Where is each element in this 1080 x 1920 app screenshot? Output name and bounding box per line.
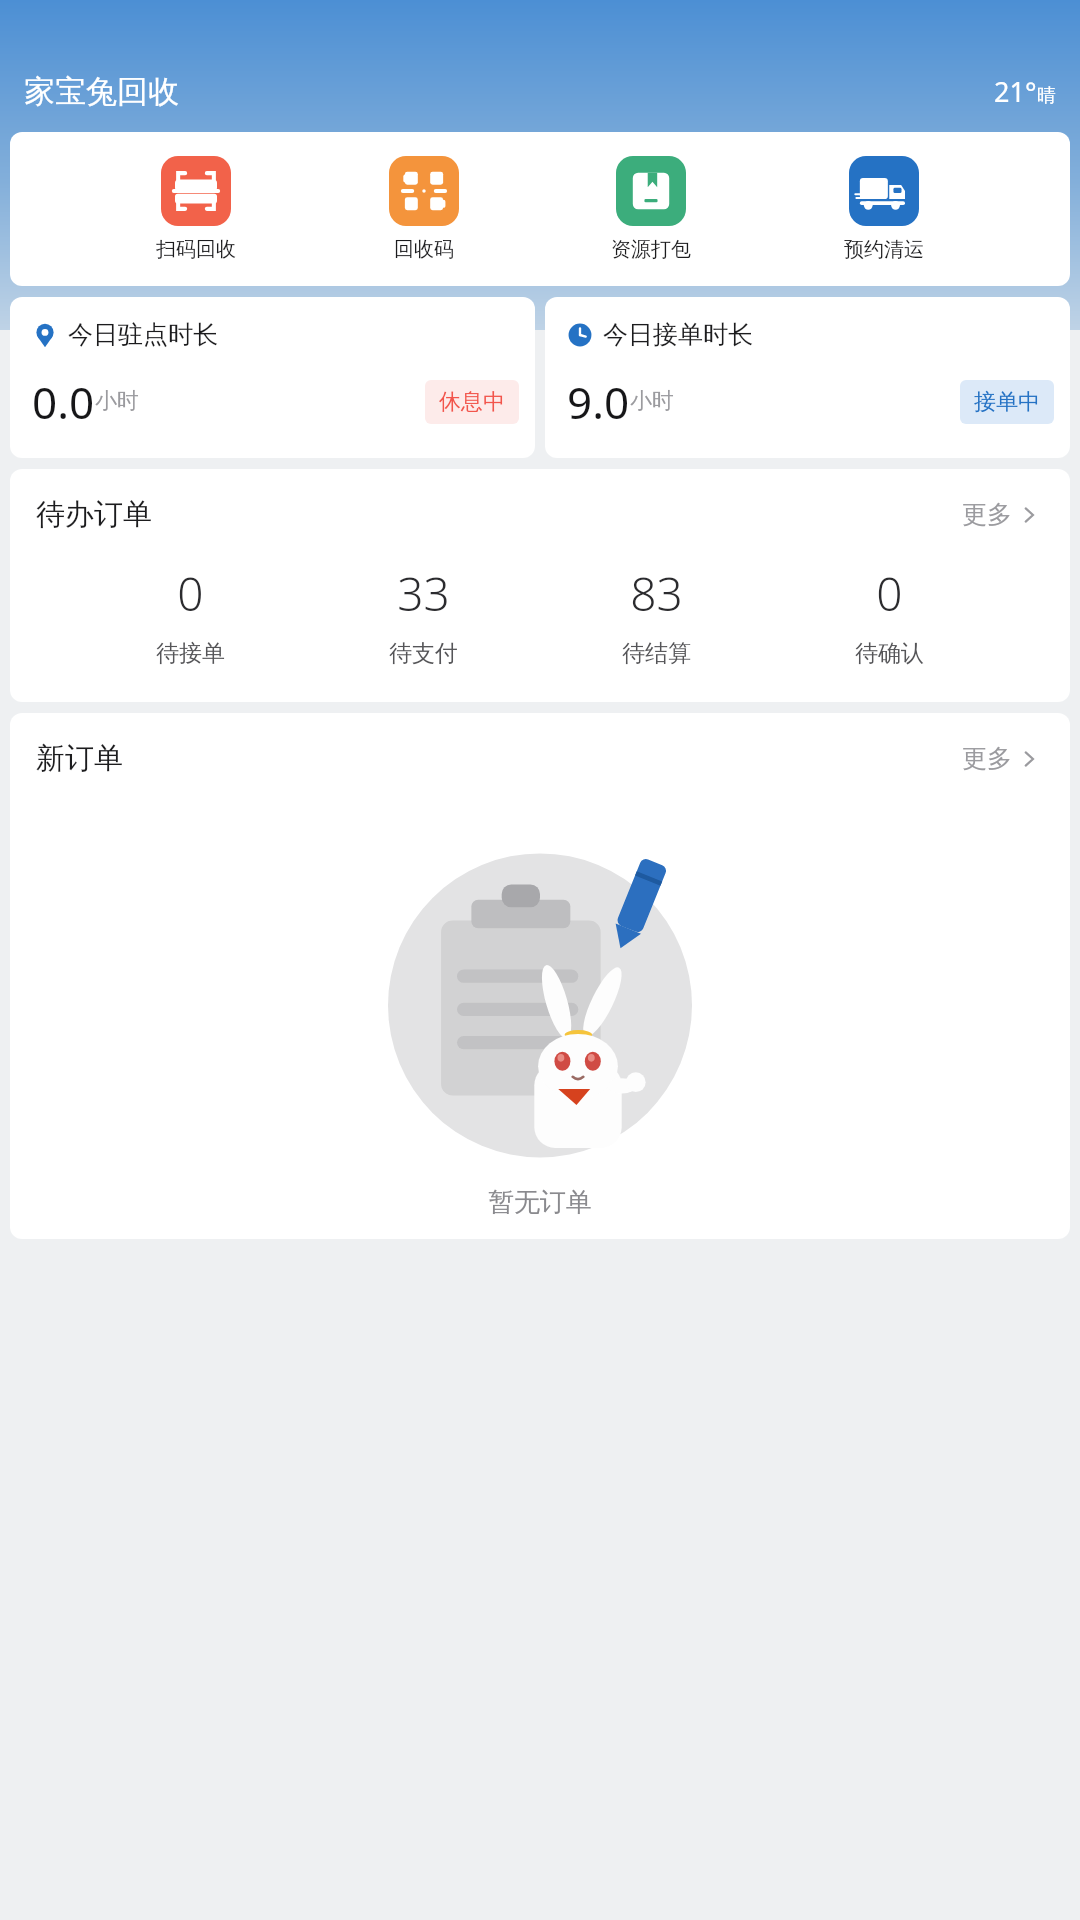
button[interactable]: 扫码回收	[150, 154, 242, 264]
button[interactable]: Location	[10, 297, 535, 458]
staticText: 小时	[95, 387, 139, 415]
button[interactable]: 回收码	[383, 154, 465, 264]
staticText: 家宝兔回收	[24, 72, 179, 111]
button[interactable]: 更多	[958, 495, 1044, 534]
staticText: 资源打包	[611, 237, 691, 262]
staticText: 更多	[962, 743, 1012, 774]
staticText: 待确认	[855, 639, 924, 668]
button[interactable]: 预约清运	[838, 154, 930, 264]
staticText: 今日驻点时长	[68, 319, 218, 350]
other: Location	[32, 322, 58, 348]
staticText: 21°	[994, 73, 1037, 110]
button[interactable]: Clock	[545, 297, 1070, 458]
button[interactable]: 33	[371, 560, 476, 670]
staticText: 83	[630, 562, 683, 625]
staticText: 待结算	[622, 639, 691, 668]
staticText: 33	[397, 562, 450, 625]
staticText: 更多	[962, 499, 1012, 530]
staticText: 回收码	[394, 237, 454, 262]
staticText: 待办订单	[36, 496, 152, 533]
staticText: 待支付	[389, 639, 458, 668]
staticText: 新订单	[36, 740, 123, 777]
staticText: 晴	[1037, 84, 1056, 108]
button[interactable]: 0	[138, 560, 243, 670]
button[interactable]: 资源打包	[605, 154, 697, 264]
staticText: 0	[876, 562, 903, 625]
button[interactable]: 接单中	[960, 380, 1054, 424]
staticText: 待接单	[156, 639, 225, 668]
button[interactable]: 0	[837, 560, 942, 670]
staticText: 0	[177, 562, 204, 625]
staticText: 9.0	[567, 372, 630, 432]
button[interactable]: 休息中	[425, 380, 519, 424]
staticText: 预约清运	[844, 237, 924, 262]
other: Clock	[567, 322, 593, 348]
staticText: 今日接单时长	[603, 319, 753, 350]
staticText: 休息中	[439, 388, 505, 416]
staticText: 小时	[630, 387, 674, 415]
button[interactable]: 更多	[958, 739, 1044, 778]
staticText: 接单中	[974, 388, 1040, 416]
staticText: 0.0	[32, 372, 95, 432]
staticText: 扫码回收	[156, 237, 236, 262]
button[interactable]: 83	[604, 560, 709, 670]
staticText: 暂无订单	[488, 1186, 592, 1219]
